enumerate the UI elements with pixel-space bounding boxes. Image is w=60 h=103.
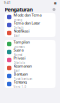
button[interactable]: Tema dan Latar <box>4 21 55 29</box>
button[interactable]: Tampilan <box>4 40 55 48</box>
staticText: Normal <box>14 53 23 57</box>
staticText: Tampilan <box>14 39 30 45</box>
staticText: 9:41 <box>4 1 11 5</box>
staticText: Default <box>14 26 24 30</box>
staticText: Notifikasi <box>14 28 30 34</box>
staticText: Pusat bantuan <box>14 77 33 81</box>
staticText: Dikelola <box>14 61 25 65</box>
staticText: Bantuan <box>14 71 28 77</box>
staticText: Suara <box>14 47 24 53</box>
button[interactable]: Notifikasi <box>4 29 55 37</box>
staticText: Mode dan Tema <box>14 12 42 18</box>
staticText: Aktif <box>14 69 20 73</box>
staticText: Versi 1.0 <box>14 85 27 89</box>
button[interactable]: Suara <box>4 48 55 56</box>
staticText: Privasi <box>14 55 26 61</box>
button[interactable]: Mode dan Tema <box>4 13 55 21</box>
button[interactable]: Tentang <box>4 80 55 88</box>
staticText: Keamanan <box>14 63 32 69</box>
button[interactable]: Keamanan <box>4 64 55 72</box>
button[interactable]: Privasi <box>4 56 55 64</box>
staticText: ▮▮ <box>54 1 56 4</box>
button[interactable]: Search <box>52 8 55 11</box>
staticText: Otomatis <box>14 45 25 49</box>
staticText: Pengaturan <box>4 6 32 13</box>
button[interactable]: Bantuan <box>4 72 55 80</box>
staticText: Tema dan Latar <box>14 20 41 26</box>
staticText: Tentang <box>14 79 27 85</box>
staticText: Terang <box>14 18 23 22</box>
staticText: Aktif <box>14 34 20 38</box>
